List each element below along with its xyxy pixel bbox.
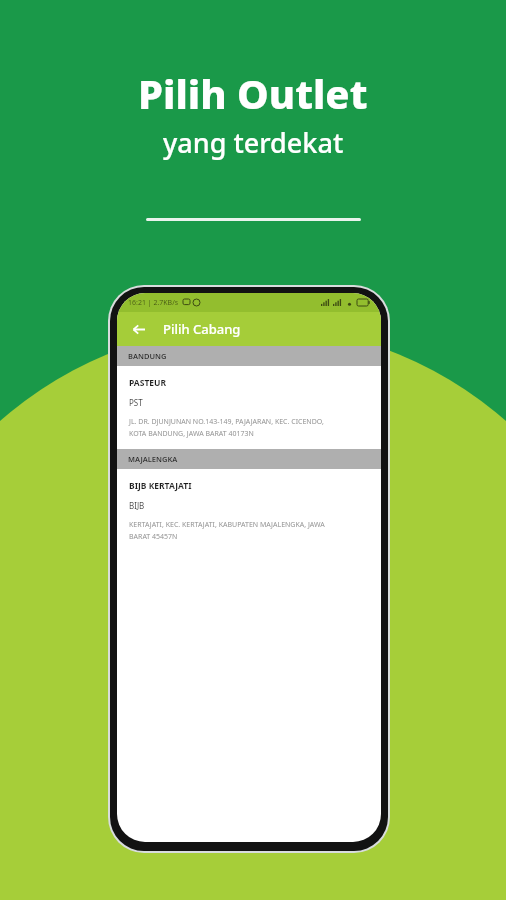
staticText: 16:21 | 2.7KB/s	[128, 298, 179, 308]
staticText: BANDUNG	[128, 351, 167, 361]
button[interactable]: BIJB KERTAJATI	[117, 469, 381, 552]
button[interactable]: PASTEUR	[117, 366, 381, 449]
button[interactable]: Back	[126, 317, 150, 341]
staticText: yang terdekat	[163, 124, 344, 161]
staticText: Pilih Outlet	[138, 66, 368, 120]
staticText: Pilih Cabang	[163, 320, 241, 338]
staticText: BIJB KERTAJATI	[129, 480, 192, 492]
staticText: JL. DR. DJUNJUNAN NO.143-149, PAJAJARAN,…	[129, 417, 324, 438]
staticText: PASTEUR	[129, 377, 167, 389]
staticText: MAJALENGKA	[128, 454, 178, 464]
staticText: BIJB	[129, 500, 145, 511]
staticText: PST	[129, 397, 143, 408]
staticText: KERTAJATI, KEC. KERTAJATI, KABUPATEN MAJ…	[129, 520, 325, 541]
